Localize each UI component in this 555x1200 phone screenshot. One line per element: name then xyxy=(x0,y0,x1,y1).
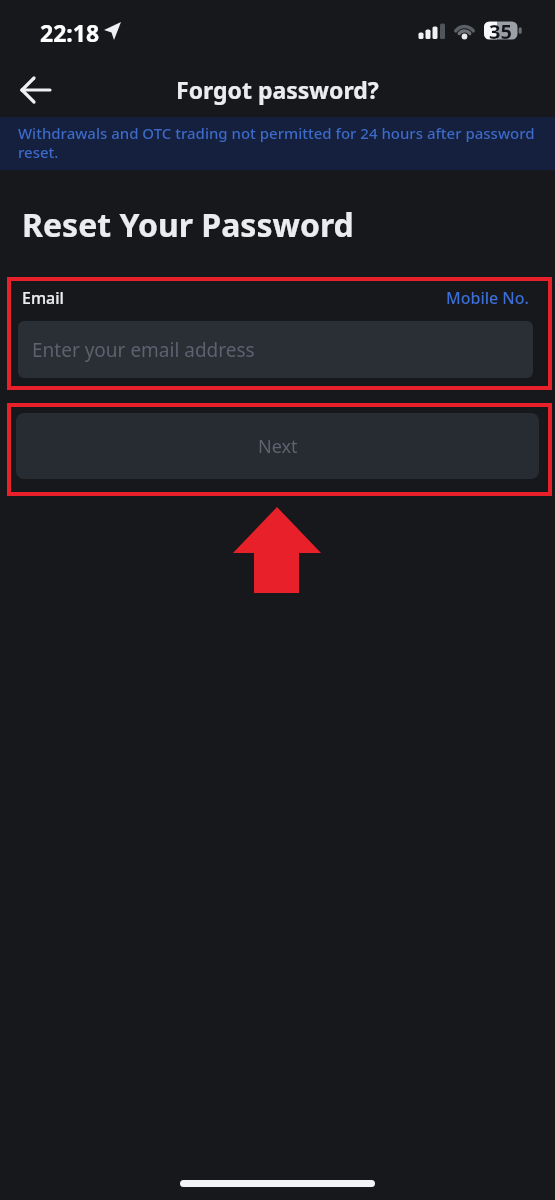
staticText: Mobile No. xyxy=(446,287,529,309)
staticText: 22:18 xyxy=(40,17,100,48)
staticText: Forgot password? xyxy=(176,74,379,105)
staticText: Next xyxy=(258,434,298,459)
staticText: 35 xyxy=(489,18,512,45)
staticText: Email xyxy=(22,287,64,309)
button[interactable] xyxy=(14,72,58,108)
staticText: Enter your email address xyxy=(32,337,255,363)
button[interactable]: Mobile No. xyxy=(446,287,529,309)
staticText: Withdrawals and OTC trading not permitte… xyxy=(18,123,535,162)
staticText: Reset Your Password xyxy=(22,203,354,247)
button[interactable]: Enter your email address xyxy=(18,321,533,378)
button[interactable]: Next xyxy=(16,413,539,479)
